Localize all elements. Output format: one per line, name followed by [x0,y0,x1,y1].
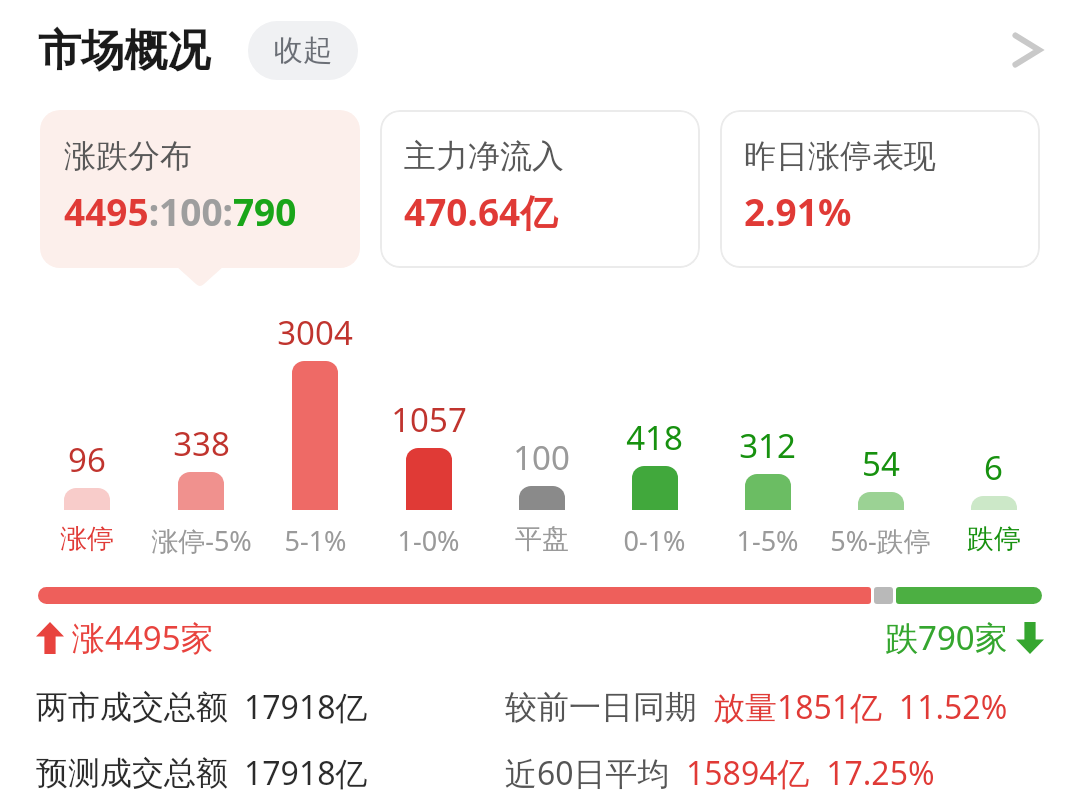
button[interactable]: 主力净流入 [380,110,700,268]
staticText: 5-1% [284,522,347,559]
button[interactable]: 涨跌分布 [40,110,360,268]
staticText: 17918亿 [244,751,368,795]
staticText: 跌790家 [885,615,1008,660]
staticText: 较前一日同期 [505,687,697,727]
staticText: 15894亿 17.25% [686,751,935,795]
staticText: 54 [862,441,900,486]
staticText: 市场概况 [38,24,210,78]
staticText: 4495:100:790 [64,186,297,236]
staticText: 两市成交总额 [36,687,228,727]
staticText: 6 [984,445,1003,490]
staticText: 338 [173,421,230,466]
staticText: 涨4495家 [72,615,214,660]
staticText: 涨跌分布 [64,136,192,176]
staticText: 收起 [274,32,332,69]
staticText: 1057 [391,397,467,442]
staticText: 5%-跌停 [830,522,931,559]
staticText: 3004 [277,310,353,355]
button[interactable]: 收起 [248,21,358,80]
staticText: 100 [513,435,570,480]
staticText: 96 [68,437,106,482]
staticText: 近60日平均 [505,751,670,795]
staticText: 312 [739,423,796,468]
staticText: 0-1% [623,522,686,559]
staticText: 涨停-5% [151,522,252,559]
staticText: 2.91% [744,186,852,236]
staticText: 1-5% [736,522,799,559]
staticText: 昨日涨停表现 [744,136,936,176]
staticText: 1-0% [397,522,460,559]
button[interactable]: More [1002,22,1058,78]
staticText: 放量1851亿 11.52% [713,685,1008,729]
staticText: 涨停 [60,522,114,556]
staticText: 平盘 [515,522,569,556]
staticText: 跌停 [967,522,1021,556]
staticText: 418 [626,415,683,460]
button[interactable]: 昨日涨停表现 [720,110,1040,268]
staticText: 470.64亿 [404,186,558,237]
staticText: 预测成交总额 [36,753,228,793]
staticText: 主力净流入 [404,136,564,176]
staticText: 17918亿 [244,685,368,729]
